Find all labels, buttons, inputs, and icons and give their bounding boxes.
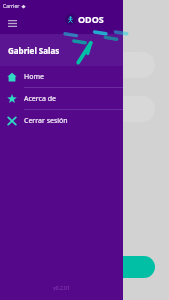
staticText: Gabriel Salas bbox=[8, 45, 60, 56]
button[interactable]: Home bbox=[0, 66, 123, 87]
staticText: Home bbox=[24, 72, 44, 82]
staticText: ODOS bbox=[78, 13, 104, 25]
staticText: v0.2.01 bbox=[0, 285, 123, 292]
button[interactable] bbox=[14, 52, 155, 78]
staticText: Acerca de bbox=[24, 94, 56, 104]
staticText: Cerrar sesión bbox=[24, 116, 68, 126]
button[interactable]: Acerca de bbox=[0, 88, 123, 109]
button[interactable] bbox=[14, 96, 155, 122]
button[interactable]: Menu bbox=[4, 15, 20, 31]
button[interactable]: ODOS bbox=[65, 13, 104, 25]
staticText: Carrier bbox=[3, 3, 20, 10]
button[interactable]: Cerrar sesión bbox=[0, 110, 123, 131]
button[interactable] bbox=[14, 256, 155, 278]
